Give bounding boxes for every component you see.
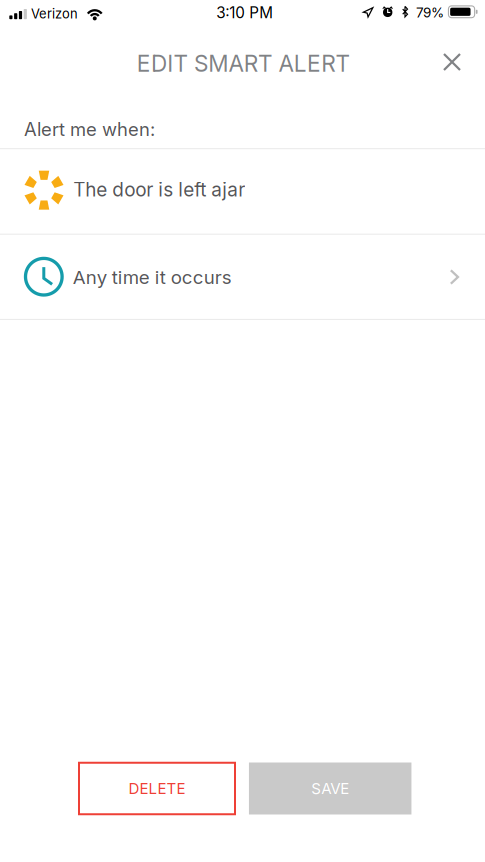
staticText: Any time it occurs xyxy=(73,266,232,289)
staticText: The door is left ajar xyxy=(73,178,245,201)
button[interactable]: The door is left ajar xyxy=(0,149,485,234)
staticText: 79% xyxy=(416,4,444,21)
staticText: Alert me when: xyxy=(24,118,155,141)
staticText: DELETE xyxy=(128,779,185,798)
button[interactable]: SAVE xyxy=(249,762,411,814)
staticText: Verizon xyxy=(31,6,78,21)
button[interactable]: Close xyxy=(429,39,475,85)
staticText: SAVE xyxy=(311,779,349,798)
staticText: EDIT SMART ALERT xyxy=(137,50,350,77)
button[interactable]: Any time it occurs xyxy=(0,234,485,319)
staticText: 3:10 PM xyxy=(216,3,273,22)
button[interactable]: DELETE xyxy=(79,763,235,814)
